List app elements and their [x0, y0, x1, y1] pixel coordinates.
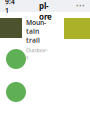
staticText: Outdoors	[26, 47, 48, 61]
staticText: Explore	[39, 0, 52, 22]
staticText: Mountain trail	[26, 18, 46, 45]
staticText: •••	[76, 2, 85, 10]
staticText: 9:41	[5, 0, 15, 15]
